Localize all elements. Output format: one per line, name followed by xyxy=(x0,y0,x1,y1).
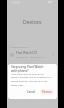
button[interactable]: Watch xyxy=(7,50,58,59)
staticText: Connected · Tap to set up xyxy=(16,55,45,58)
staticText: ▮▮▮ xyxy=(48,1,53,4)
other: Watch xyxy=(10,53,14,57)
button[interactable]: Remove xyxy=(40,89,54,95)
staticText: Stop using Pixel Watch with phone? xyxy=(11,65,44,72)
staticText: Remove xyxy=(42,90,52,94)
staticText: PAIRED DEVICES xyxy=(10,45,29,48)
button[interactable]: Cancel xyxy=(25,89,38,95)
staticText: Your watch will be reset to its factory … xyxy=(11,72,52,86)
staticText: Pixel Watch LTE xyxy=(16,51,37,55)
staticText: Devices xyxy=(23,18,42,25)
staticText: ‹ xyxy=(10,35,11,39)
staticText: OTHER DEVICES xyxy=(10,62,28,65)
staticText: 10:05 xyxy=(12,1,20,5)
staticText: Cancel xyxy=(27,90,36,94)
